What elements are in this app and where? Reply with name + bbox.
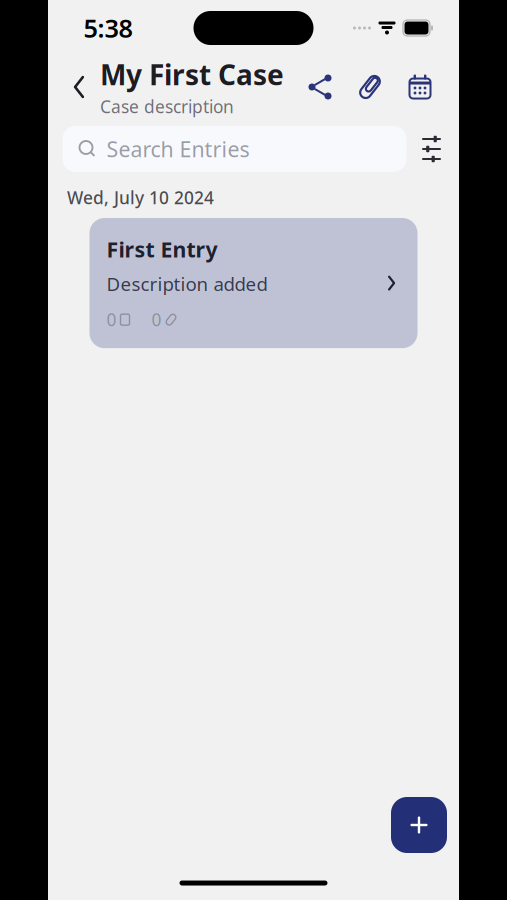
staticText: Case description <box>100 95 234 118</box>
staticText: 0 <box>106 308 116 331</box>
button[interactable]: Attachments <box>355 72 385 102</box>
staticText: Wed, July 10 2024 <box>67 186 214 209</box>
button[interactable]: Share <box>305 72 335 102</box>
button[interactable]: Search Entries <box>62 126 406 172</box>
button[interactable]: Filter <box>414 132 448 166</box>
staticText: Description added <box>106 271 267 296</box>
staticText: 0 <box>151 308 161 331</box>
staticText: 5:38 <box>83 11 132 45</box>
staticText: Search Entries <box>106 135 249 163</box>
button[interactable]: Calendar <box>405 72 435 102</box>
button[interactable]: Back <box>62 65 96 109</box>
staticText: My First Case <box>100 56 284 93</box>
staticText: First Entry <box>106 235 217 263</box>
button[interactable]: First Entry <box>89 218 417 348</box>
button[interactable]: Add entry <box>391 797 447 853</box>
